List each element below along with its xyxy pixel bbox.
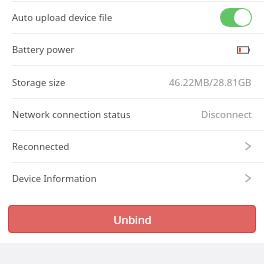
staticText: 46.22MB/28.81GB (169, 76, 252, 89)
button[interactable]: Battery power (0, 34, 264, 65)
other: Battery power level (237, 46, 251, 54)
staticText: Device Information (12, 172, 97, 185)
staticText: Battery power (12, 43, 75, 56)
button[interactable]: Auto upload device file switch (220, 8, 252, 27)
staticText: Reconnected (12, 140, 70, 153)
other: Open (242, 173, 254, 185)
button[interactable]: Device Information (0, 163, 264, 194)
staticText: Auto upload device file (12, 11, 113, 24)
staticText: Network connection status (12, 108, 131, 121)
button[interactable]: Network connection status (0, 99, 264, 130)
button[interactable]: Unbind (8, 205, 256, 233)
staticText: Disconnect (201, 108, 252, 121)
other: Open (242, 141, 254, 153)
button[interactable]: Reconnected (0, 131, 264, 162)
staticText: Unbind (113, 212, 152, 227)
staticText: Storage size (12, 76, 66, 89)
button[interactable]: Storage size (0, 66, 264, 98)
button[interactable]: Auto upload device file (0, 2, 264, 33)
